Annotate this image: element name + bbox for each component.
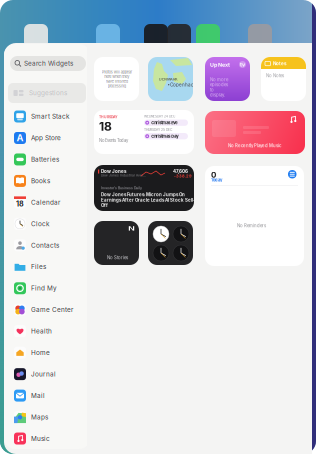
- button[interactable]: 0: [205, 166, 304, 266]
- staticText: Notes: [273, 61, 287, 66]
- staticText: Christmas Day: [151, 134, 178, 139]
- button[interactable]: Clock: [8, 213, 86, 234]
- staticText: Find My: [31, 284, 57, 292]
- staticText: 18: [99, 119, 112, 133]
- button[interactable]: Smart Stack: [8, 106, 86, 127]
- staticText: Journal: [31, 370, 56, 378]
- staticText: Dow Jones: [101, 168, 127, 174]
- button[interactable]: Dow Jones: [94, 165, 194, 211]
- button[interactable]: Search Widgets: [10, 56, 86, 71]
- staticText: DENMARK: [159, 77, 178, 81]
- staticText: No Events Today: [99, 138, 128, 143]
- button[interactable]: [148, 221, 193, 265]
- button[interactable]: Journal: [8, 364, 86, 385]
- staticText: 18: [16, 200, 24, 208]
- staticText: Calendar: [31, 198, 60, 206]
- staticText: Home: [31, 349, 50, 356]
- staticText: Mail: [31, 392, 45, 399]
- button[interactable]: Home: [8, 342, 86, 363]
- button[interactable]: Files: [8, 256, 86, 277]
- button[interactable]: Maps: [8, 407, 86, 428]
- staticText: Investor's Business Daily: [101, 186, 142, 190]
- button[interactable]: Notes: [261, 57, 306, 101]
- button[interactable]: No Stories: [94, 221, 139, 265]
- staticText: Batteries: [31, 156, 59, 163]
- staticText: THURSDAY: [99, 115, 118, 119]
- button[interactable]: Mail: [8, 385, 86, 406]
- staticText: Suggestions: [29, 89, 67, 97]
- staticText: Files: [31, 263, 46, 271]
- staticText: -338.29: [174, 173, 192, 178]
- staticText: THURSDAY 25 DEC: [144, 128, 172, 132]
- button[interactable]: Books: [8, 170, 86, 191]
- staticText: Photos will appear here when they have f…: [101, 70, 131, 88]
- staticText: Clock: [31, 220, 50, 228]
- button[interactable]: THURSDAY: [94, 110, 194, 154]
- staticText: WEDNESDAY 24 DEC: [144, 114, 175, 118]
- button[interactable]: DENMARK: [148, 57, 193, 101]
- staticText: 0: [211, 170, 216, 180]
- staticText: Music: [31, 435, 50, 442]
- staticText: Contacts: [31, 241, 59, 249]
- staticText: No Stories: [107, 255, 128, 260]
- button[interactable]: Game Center: [8, 299, 86, 320]
- button[interactable]: No Recently Played Music: [205, 111, 305, 154]
- staticText: No Notes: [266, 73, 284, 78]
- staticText: 47,606: [173, 168, 188, 174]
- staticText: Copenhagen: [170, 82, 200, 87]
- staticText: No Reminders: [237, 223, 266, 228]
- staticText: Today: [211, 177, 222, 182]
- staticText: Smart Stack: [31, 113, 70, 120]
- staticText: No more episodes to display.: [210, 77, 228, 98]
- staticText: Books: [31, 177, 50, 185]
- staticText: Search Widgets: [24, 60, 73, 67]
- button[interactable]: Photos will appear here when they have f…: [94, 57, 139, 101]
- button[interactable]: Suggestions: [8, 83, 86, 103]
- staticText: Christmas Eve: [151, 120, 177, 125]
- staticText: Game Center: [31, 306, 73, 314]
- button[interactable]: Music: [8, 428, 86, 449]
- button[interactable]: Health: [8, 321, 86, 342]
- staticText: Dow Jones Futures: Micron Jumps On: [101, 192, 185, 197]
- button[interactable]: Up Next: [205, 57, 250, 101]
- staticText: Earnings After Oracle Leads AI Stock Sel…: [101, 197, 195, 208]
- staticText: No Recently Played Music: [228, 143, 281, 148]
- button[interactable]: 18: [8, 192, 86, 213]
- button[interactable]: A: [8, 127, 86, 148]
- staticText: tv: [240, 61, 245, 68]
- staticText: Dow Jones Industrial Aver…: [101, 173, 146, 177]
- button[interactable]: Find My: [8, 278, 86, 299]
- staticText: App Store: [31, 134, 61, 142]
- button[interactable]: Contacts: [8, 235, 86, 256]
- staticText: A: [16, 132, 23, 144]
- staticText: Up Next: [210, 61, 230, 68]
- button[interactable]: Batteries: [8, 149, 86, 170]
- staticText: Health: [31, 327, 52, 335]
- staticText: Maps: [31, 413, 48, 421]
